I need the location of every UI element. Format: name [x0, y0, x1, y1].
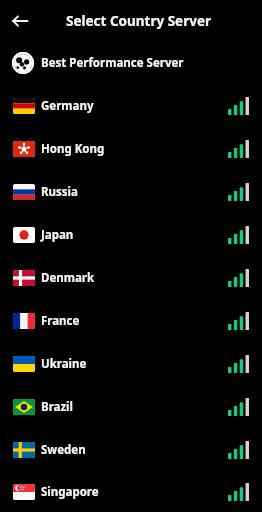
button[interactable]: Best Performance Server — [0, 41, 262, 84]
staticText: Sweden — [41, 442, 86, 458]
button[interactable]: Ukraine — [0, 342, 262, 385]
button[interactable]: Japan — [0, 213, 262, 256]
staticText: France — [41, 313, 80, 329]
button[interactable]: Back — [7, 8, 33, 34]
button[interactable]: Hong Kong — [0, 127, 262, 170]
staticText: Japan — [41, 227, 74, 243]
button[interactable]: Singapore — [0, 471, 262, 512]
staticText: Hong Kong — [41, 141, 105, 157]
button[interactable]: Sweden — [0, 428, 262, 471]
button[interactable]: France — [0, 299, 262, 342]
button[interactable]: Brazil — [0, 385, 262, 428]
staticText: Singapore — [41, 484, 99, 500]
staticText: Germany — [41, 98, 94, 114]
staticText: Brazil — [41, 399, 73, 415]
staticText: Denmark — [41, 270, 95, 286]
staticText: Ukraine — [41, 356, 87, 372]
staticText: Russia — [41, 184, 78, 200]
button[interactable]: Denmark — [0, 256, 262, 299]
button[interactable]: Russia — [0, 170, 262, 213]
staticText: Select Country Server — [66, 12, 212, 30]
staticText: Best Performance Server — [41, 55, 184, 71]
button[interactable]: Germany — [0, 84, 262, 127]
